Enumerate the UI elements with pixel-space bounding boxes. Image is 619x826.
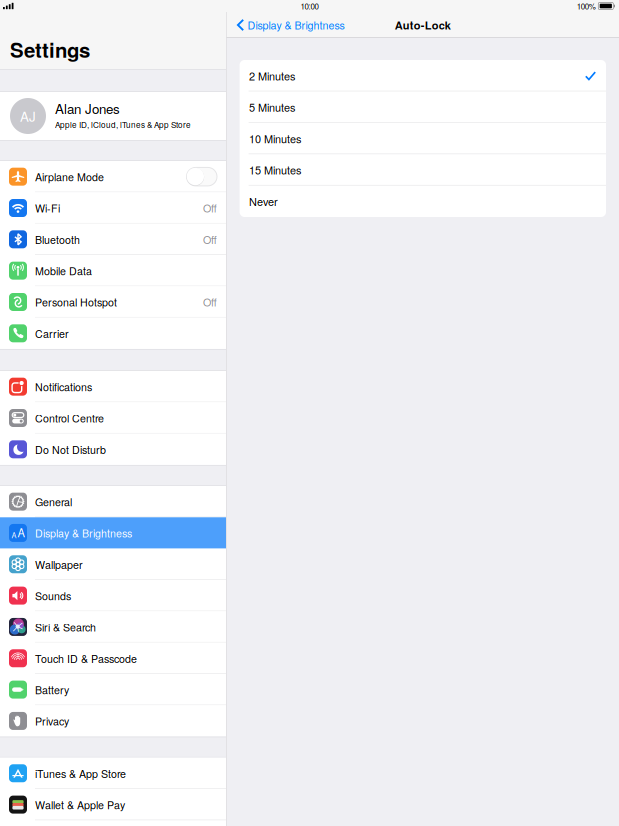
button[interactable]: Siri & Search — [0, 611, 226, 643]
staticText: Sounds — [35, 588, 71, 603]
button[interactable]: A — [0, 517, 226, 549]
button[interactable]: Bluetooth — [0, 224, 226, 255]
staticText: 10 Minutes — [249, 131, 301, 146]
staticText: iTunes & App Store — [35, 766, 126, 781]
staticText: 5 Minutes — [249, 99, 295, 115]
button[interactable]: 2 Minutes — [240, 60, 606, 91]
staticText: 100% — [577, 0, 596, 12]
button[interactable]: Wallet & Apple Pay — [0, 789, 226, 820]
button[interactable]: Carrier — [0, 318, 226, 349]
staticText: Auto-Lock — [395, 17, 451, 33]
staticText: Siri & Search — [35, 619, 96, 635]
staticText: Settings — [10, 35, 90, 64]
staticText: Bluetooth — [35, 232, 80, 247]
staticText: Never — [249, 193, 278, 209]
button[interactable]: 15 Minutes — [240, 154, 606, 186]
staticText: Battery — [35, 682, 69, 697]
staticText: Alan Jones — [55, 99, 120, 118]
staticText: Airplane Mode — [35, 169, 104, 184]
staticText: Control Centre — [35, 410, 104, 426]
button[interactable]: Display & Brightness — [227, 12, 345, 38]
button[interactable]: Wi-Fi — [0, 192, 226, 224]
staticText: Touch ID & Passcode — [35, 651, 137, 666]
button[interactable]: Touch ID & Passcode — [0, 643, 226, 674]
button[interactable]: Privacy — [0, 705, 226, 737]
button[interactable]: Control Centre — [0, 402, 226, 434]
staticText: Off — [203, 200, 217, 216]
button[interactable]: AJ — [0, 92, 226, 140]
staticText: A — [17, 524, 24, 540]
staticText: A — [12, 530, 17, 540]
button[interactable]: Battery — [0, 674, 226, 705]
staticText: Privacy — [35, 713, 69, 729]
button[interactable]: General — [0, 486, 226, 517]
staticText: 2 Minutes — [249, 68, 295, 84]
button[interactable]: Mobile Data — [0, 255, 226, 286]
staticText: AJ — [20, 106, 36, 126]
button[interactable]: Sounds — [0, 580, 226, 611]
staticText: Off — [203, 232, 217, 247]
staticText: Display & Brightness — [35, 525, 132, 541]
button[interactable]: Never — [240, 186, 606, 217]
staticText: Notifications — [35, 379, 92, 394]
button[interactable]: 10 Minutes — [240, 123, 606, 154]
button[interactable]: Do Not Disturb — [0, 434, 226, 465]
button[interactable]: Personal Hotspot — [0, 286, 226, 318]
staticText: Off — [203, 294, 217, 310]
staticText: Mobile Data — [35, 263, 92, 278]
button[interactable]: Notifications — [0, 371, 226, 402]
staticText: Apple ID, iCloud, iTunes & App Store — [55, 119, 191, 130]
staticText: Do Not Disturb — [35, 442, 106, 457]
button[interactable]: Wallpaper — [0, 549, 226, 580]
staticText: 10:00 — [300, 0, 318, 12]
staticText: Carrier — [35, 326, 69, 341]
staticText: Display & Brightness — [248, 17, 345, 33]
staticText: Personal Hotspot — [35, 294, 117, 310]
staticText: General — [35, 494, 72, 509]
button[interactable]: Airplane Mode — [0, 161, 226, 192]
staticText: Wallpaper — [35, 557, 83, 572]
staticText: Wallet & Apple Pay — [35, 797, 125, 812]
staticText: 15 Minutes — [249, 162, 301, 178]
button[interactable]: 5 Minutes — [240, 91, 606, 123]
button[interactable]: iTunes & App Store — [0, 758, 226, 789]
staticText: Wi-Fi — [35, 200, 60, 216]
